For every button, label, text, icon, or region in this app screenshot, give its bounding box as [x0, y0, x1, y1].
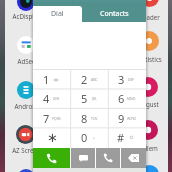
button[interactable]: [17, 36, 35, 54]
staticText: August: [138, 100, 159, 108]
staticText: Contacts: [100, 9, 129, 19]
button[interactable]: 1: [33, 70, 71, 89]
staticText: AcDisplay: [12, 12, 41, 20]
staticText: 3: [118, 72, 125, 87]
button[interactable]: 6: [108, 89, 146, 108]
button[interactable]: 5: [71, 89, 109, 108]
button[interactable]: ∗: [33, 128, 71, 147]
button[interactable]: [139, 31, 159, 51]
staticText: TUV: [91, 116, 98, 121]
staticText: 8: [81, 111, 88, 126]
button[interactable]: [138, 120, 158, 140]
staticText: WXYZ: [127, 116, 136, 121]
staticText: +: [93, 135, 95, 140]
button[interactable]: [17, 169, 35, 172]
button[interactable]: 0: [71, 128, 109, 147]
button[interactable]: [16, 125, 35, 144]
button[interactable]: [17, 0, 35, 11]
staticText: 4: [43, 91, 50, 106]
staticText: MNO: [127, 96, 136, 101]
button[interactable]: 2: [71, 70, 109, 89]
staticText: 7: [43, 111, 50, 126]
button[interactable]: [138, 77, 158, 97]
button[interactable]: #: [108, 128, 146, 147]
staticText: 5: [81, 91, 88, 106]
button[interactable]: 3: [108, 70, 146, 89]
staticText: GHI: [53, 96, 60, 101]
button[interactable]: Call: [33, 148, 70, 168]
staticText: #: [117, 130, 125, 145]
button[interactable]: [17, 81, 35, 99]
staticText: 9: [118, 111, 125, 126]
staticText: 2: [81, 72, 88, 87]
button[interactable]: Add contact: [96, 148, 120, 168]
button[interactable]: Send message: [71, 148, 95, 168]
staticText: 6: [118, 91, 125, 106]
staticText: Reader: [139, 13, 160, 21]
staticText: 1: [43, 72, 50, 87]
button[interactable]: [140, 165, 159, 172]
staticText: ABC: [91, 77, 98, 82]
staticText: ∗: [47, 130, 58, 145]
staticText: PQRS: [52, 116, 61, 121]
staticText: JKL: [92, 96, 97, 101]
button[interactable]: Dial: [33, 6, 82, 22]
staticText: AdSee: [17, 57, 36, 65]
staticText: Willem: [138, 144, 158, 152]
button[interactable]: 9: [108, 109, 146, 128]
button[interactable]: 7: [33, 109, 71, 128]
staticText: DEF: [128, 77, 135, 82]
staticText: Dial: [51, 9, 64, 19]
button[interactable]: Backspace: [121, 148, 146, 168]
staticText: AZ Screen: [12, 146, 41, 154]
staticText: Statistics: [136, 55, 162, 63]
staticText: Android: [14, 102, 38, 110]
button[interactable]: [140, 0, 159, 7]
button[interactable]: Contacts: [83, 6, 146, 22]
button[interactable]: 8: [71, 109, 109, 128]
button[interactable]: 4: [33, 89, 71, 108]
staticText: 0: [81, 130, 88, 145]
